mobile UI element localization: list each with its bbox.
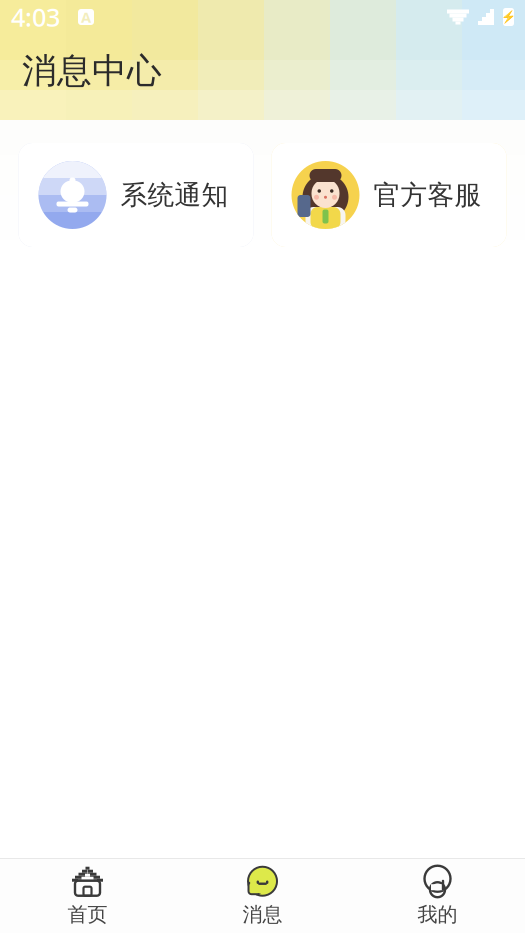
- staticText: 系统通知: [120, 179, 228, 211]
- staticText: 4:03: [11, 0, 60, 34]
- staticText: 消息中心: [22, 50, 162, 92]
- staticText: 我的: [417, 902, 457, 927]
- staticText: ⚡: [501, 10, 516, 24]
- staticText: 首页: [67, 902, 107, 927]
- button[interactable]: 消息: [175, 859, 350, 933]
- staticText: A: [81, 7, 91, 27]
- staticText: 官方客服: [373, 179, 481, 211]
- button[interactable]: 官方客服: [271, 143, 506, 247]
- button[interactable]: 首页: [0, 859, 175, 933]
- button[interactable]: 系统通知: [18, 143, 253, 247]
- button[interactable]: 我的: [350, 859, 525, 933]
- staticText: 消息: [242, 902, 282, 927]
